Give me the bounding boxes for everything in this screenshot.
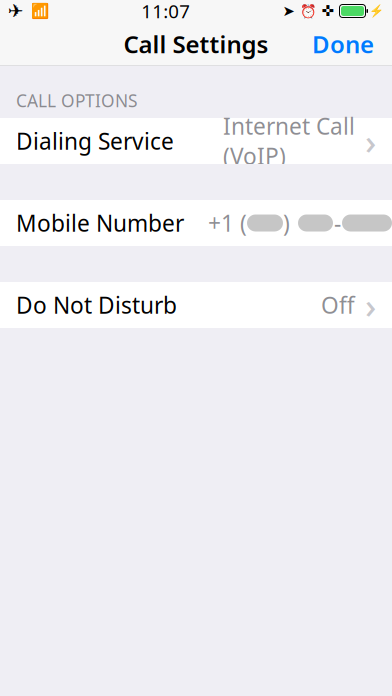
staticText: › <box>365 282 376 328</box>
staticText: Mobile Number <box>16 208 184 238</box>
staticText: Done <box>312 28 374 60</box>
staticText: Internet Call (VoIP) <box>223 111 355 171</box>
staticText: › <box>365 118 376 164</box>
button[interactable]: Mobile Number <box>0 200 392 246</box>
staticText: 📶 <box>31 3 49 19</box>
staticText: Off <box>321 290 355 320</box>
button[interactable]: Do Not Disturb <box>0 282 392 328</box>
button[interactable]: Done <box>300 20 386 68</box>
staticText: Do Not Disturb <box>16 290 177 320</box>
staticText: ⚡ <box>369 4 384 18</box>
staticText: ✜ <box>321 3 333 19</box>
staticText: ) <box>283 208 290 238</box>
staticText: +1 ( <box>208 208 247 238</box>
staticText: ✈ <box>8 0 24 22</box>
staticText: ➤ <box>282 3 294 19</box>
staticText: Call Settings <box>123 28 268 60</box>
staticText: ⏰ <box>299 3 316 19</box>
staticText: CALL OPTIONS <box>16 89 138 112</box>
button[interactable]: Dialing Service <box>0 118 392 164</box>
staticText: Dialing Service <box>16 126 174 156</box>
staticText: 11:07 <box>141 0 190 23</box>
staticText: - <box>334 208 341 238</box>
